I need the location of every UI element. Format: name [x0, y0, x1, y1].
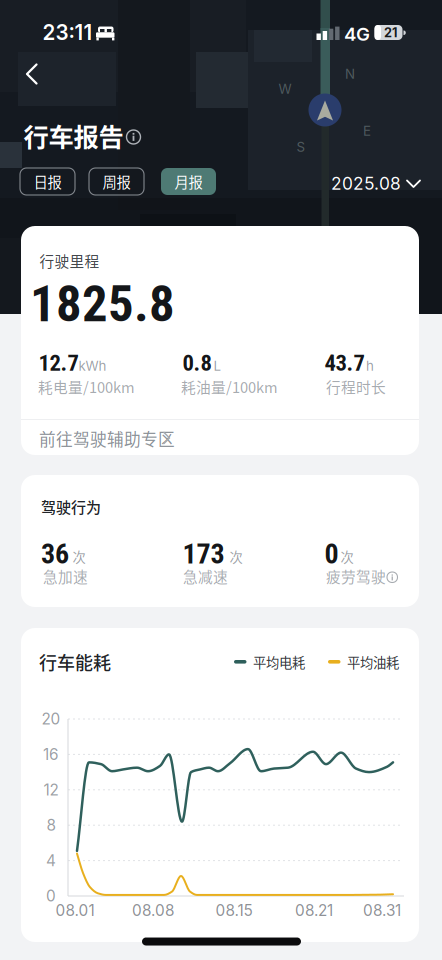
button[interactable]: 周报	[89, 168, 144, 195]
staticText: 08.08	[132, 901, 174, 920]
staticText: 平均油耗	[347, 652, 399, 672]
button[interactable]: 前往驾驶辅助专区	[21, 419, 419, 455]
staticText: 耗电量/100km	[38, 376, 135, 397]
staticText: 次	[340, 547, 353, 566]
staticText: 驾驶行为	[41, 496, 101, 517]
staticText: 月报	[174, 171, 202, 192]
staticText: 1825.8	[30, 274, 175, 334]
button[interactable]: 月报	[161, 168, 216, 195]
staticText: 4G	[344, 23, 370, 45]
staticText: 2025.08	[331, 173, 401, 194]
staticText: 行驶里程	[39, 250, 99, 271]
staticText: 急加速	[43, 565, 88, 587]
staticText: 08.01	[55, 901, 94, 920]
staticText: S	[296, 139, 305, 155]
staticText: 21	[384, 25, 397, 40]
staticText: 4	[46, 851, 56, 870]
staticText: 0	[324, 538, 338, 570]
staticText: 0	[46, 887, 56, 905]
staticText: 次	[72, 547, 85, 566]
button[interactable]: About driving report	[126, 129, 141, 144]
staticText: kWh	[78, 358, 106, 374]
staticText: 23:11	[42, 20, 92, 45]
staticText: E	[363, 123, 371, 139]
staticText: 20	[41, 710, 60, 728]
staticText: 前往驾驶辅助专区	[39, 426, 175, 450]
button[interactable]: 日报	[20, 168, 75, 195]
staticText: N	[345, 66, 355, 82]
staticText: 08.21	[295, 901, 333, 920]
staticText: 周报	[102, 171, 130, 192]
button[interactable]: 2025.08	[321, 169, 423, 198]
staticText: 36	[41, 538, 69, 570]
staticText: 行程时长	[326, 376, 386, 397]
staticText: 次	[229, 547, 242, 566]
staticText: 08.31	[363, 901, 401, 920]
staticText: W	[278, 81, 291, 97]
staticText: 173	[182, 538, 224, 570]
button[interactable]: Back	[0, 44, 64, 104]
staticText: 行车报告	[23, 117, 123, 154]
staticText: 急减速	[183, 565, 228, 587]
staticText: 43.7	[324, 350, 364, 376]
staticText: 耗油量/100km	[181, 376, 278, 397]
staticText: 行车能耗	[39, 649, 111, 675]
staticText: 16	[43, 745, 59, 764]
staticText: 0.8	[182, 350, 211, 376]
staticText: 疲劳驾驶	[326, 565, 386, 587]
staticText: 12.7	[38, 350, 78, 376]
staticText: 12	[43, 780, 58, 799]
staticText: 08.15	[215, 901, 252, 920]
staticText: h	[366, 358, 374, 374]
staticText: 平均电耗	[253, 652, 305, 672]
staticText: 日报	[33, 171, 61, 192]
staticText: 8	[46, 816, 55, 834]
staticText: L	[213, 358, 221, 374]
